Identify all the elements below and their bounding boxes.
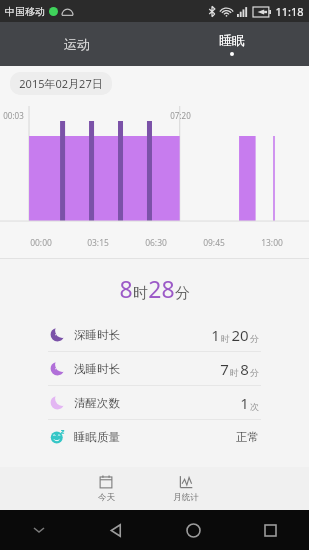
staticText: 06:30 bbox=[145, 237, 167, 249]
staticText: 07:20 bbox=[170, 110, 191, 121]
staticText: 深睡时长 bbox=[74, 328, 120, 342]
other: Back bbox=[109, 523, 124, 538]
staticText: 1 bbox=[240, 393, 249, 413]
staticText: 09:45 bbox=[203, 237, 225, 249]
button[interactable]: 睡眠质量 bbox=[0, 420, 309, 453]
button[interactable]: 清醒次数 bbox=[0, 386, 309, 419]
staticText: 时 bbox=[230, 367, 239, 378]
staticText: 28 bbox=[148, 273, 175, 304]
staticText: 今天 bbox=[98, 492, 115, 503]
staticText: 睡眠质量 bbox=[74, 430, 120, 444]
staticText: 2015年02月27日 bbox=[19, 76, 103, 91]
button[interactable]: 运动 bbox=[0, 22, 154, 66]
staticText: 03:15 bbox=[87, 237, 109, 249]
staticText: 次 bbox=[250, 401, 259, 412]
other: Home bbox=[186, 523, 201, 538]
button[interactable]: 睡眠 bbox=[154, 22, 309, 66]
staticText: 20 bbox=[231, 325, 249, 345]
staticText: 浅睡时长 bbox=[74, 362, 120, 376]
staticText: 运动 bbox=[64, 36, 90, 52]
staticText: 分 bbox=[250, 367, 259, 378]
staticText: 分 bbox=[250, 333, 259, 344]
staticText: 分 bbox=[175, 284, 190, 303]
staticText: 清醒次数 bbox=[74, 396, 120, 410]
staticText: 正常 bbox=[236, 430, 259, 444]
staticText: 时 bbox=[221, 333, 230, 344]
staticText: 8 bbox=[119, 273, 133, 304]
staticText: 7 bbox=[220, 359, 229, 379]
staticText: 00:00 bbox=[30, 237, 52, 249]
staticText: 00:03 bbox=[3, 110, 24, 121]
staticText: 13:00 bbox=[261, 237, 283, 249]
button[interactable]: 浅睡时长 bbox=[0, 352, 309, 385]
staticText: 1 bbox=[211, 325, 220, 345]
staticText: 中国移动 bbox=[5, 5, 45, 18]
button[interactable]: 深睡时长 bbox=[0, 318, 309, 351]
staticText: 睡眠 bbox=[219, 32, 245, 48]
staticText: 8 bbox=[240, 359, 249, 379]
staticText: 时 bbox=[133, 284, 148, 303]
button[interactable]: 月统计 bbox=[160, 467, 212, 510]
staticText: 月统计 bbox=[173, 492, 199, 503]
button[interactable]: 2015年02月27日 bbox=[10, 72, 112, 95]
other: Recents bbox=[264, 524, 277, 537]
staticText: 11:18 bbox=[275, 4, 304, 19]
other: Hide bbox=[34, 525, 44, 535]
button[interactable]: 今天 bbox=[80, 467, 132, 510]
